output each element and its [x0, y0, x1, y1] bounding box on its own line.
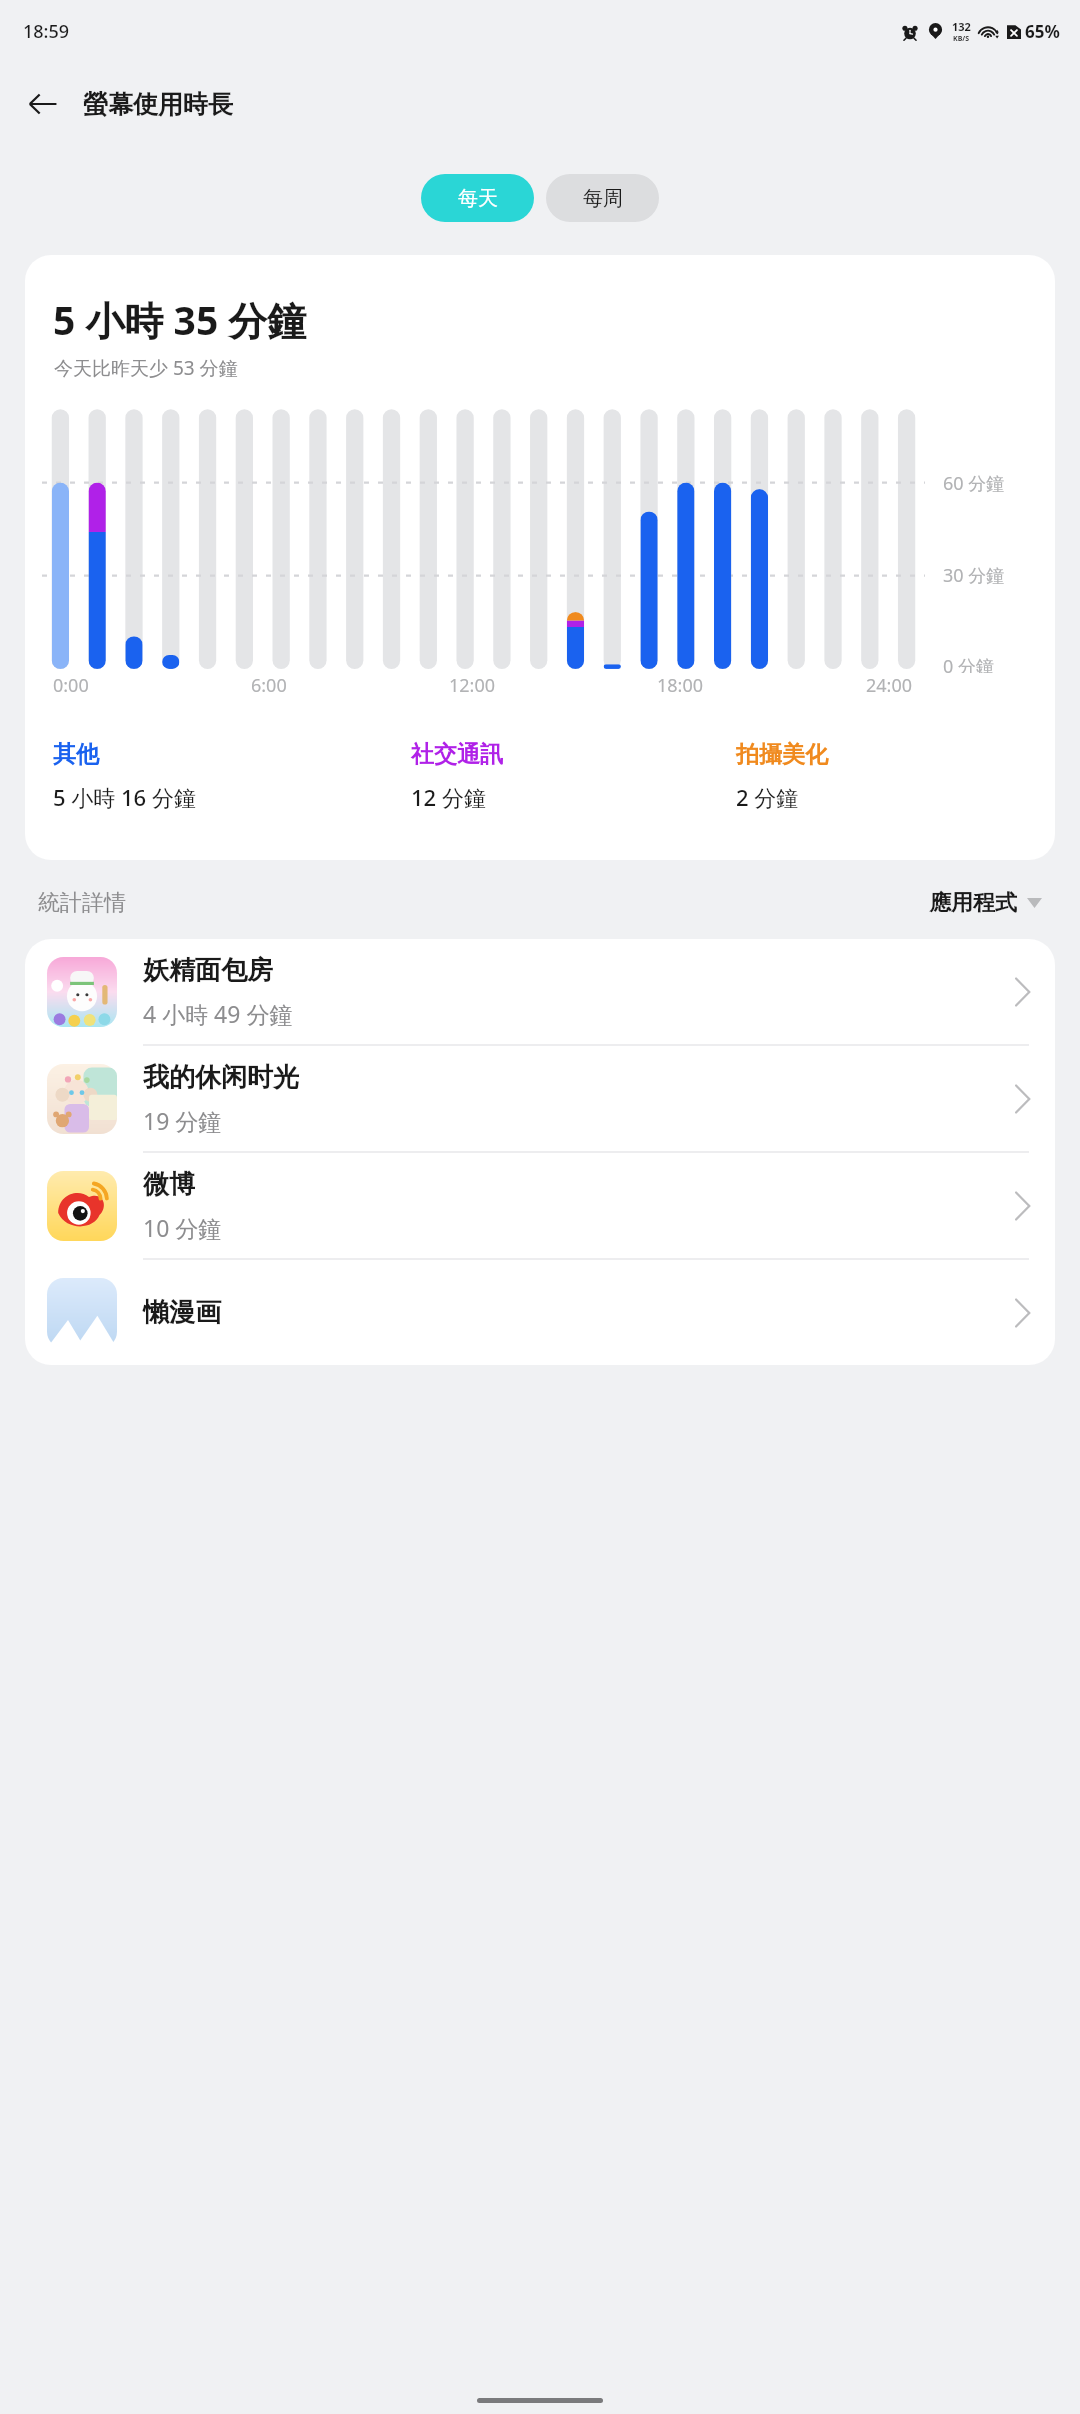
- staticText: 拍攝美化: [736, 740, 828, 769]
- staticText: 我的休闲时光: [143, 1061, 299, 1094]
- staticText: KB/S: [953, 34, 970, 44]
- button[interactable]: Back: [14, 75, 72, 133]
- button[interactable]: 懶漫画: [25, 1260, 1055, 1365]
- staticText: 18:00: [657, 673, 704, 698]
- button[interactable]: 每周: [546, 174, 659, 222]
- staticText: 0 分鐘: [943, 654, 994, 673]
- staticText: 65%: [1025, 20, 1060, 43]
- staticText: 60 分鐘: [943, 471, 1005, 496]
- button[interactable]: 微博: [25, 1153, 1055, 1258]
- button[interactable]: 妖精面包房: [25, 939, 1055, 1044]
- staticText: 今天比昨天少 53 分鐘: [54, 355, 238, 381]
- staticText: 螢幕使用時長: [83, 89, 233, 120]
- staticText: 5 小時 16 分鐘: [53, 782, 196, 812]
- staticText: 24:00: [866, 673, 913, 698]
- staticText: 10 分鐘: [143, 1212, 222, 1243]
- staticText: 應用程式: [929, 889, 1017, 917]
- staticText: 妖精面包房: [143, 954, 273, 987]
- staticText: 懶漫画: [143, 1296, 221, 1329]
- staticText: 其他: [53, 740, 99, 769]
- staticText: 12:00: [449, 673, 496, 698]
- staticText: 微博: [143, 1168, 195, 1201]
- staticText: 2 分鐘: [736, 782, 799, 812]
- staticText: 每天: [458, 186, 498, 211]
- staticText: 社交通訊: [411, 740, 503, 769]
- button[interactable]: 每天: [421, 174, 534, 222]
- button[interactable]: 我的休闲时光: [25, 1046, 1055, 1151]
- staticText: 統計詳情: [38, 889, 126, 917]
- staticText: 132: [952, 19, 971, 34]
- staticText: 5 小時 35 分鐘: [53, 293, 307, 346]
- staticText: 30 分鐘: [943, 563, 1005, 588]
- staticText: 每周: [583, 186, 623, 211]
- staticText: 12 分鐘: [411, 782, 486, 812]
- staticText: 18:59: [23, 19, 70, 44]
- staticText: 19 分鐘: [143, 1105, 222, 1136]
- button[interactable]: 應用程式: [925, 885, 1046, 921]
- staticText: 6:00: [251, 673, 287, 698]
- staticText: 0:00: [53, 673, 89, 698]
- staticText: 4 小時 49 分鐘: [143, 998, 293, 1029]
